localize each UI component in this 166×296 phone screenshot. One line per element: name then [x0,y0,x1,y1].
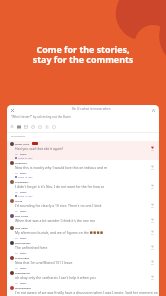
button[interactable]: Tool3 [29,123,36,130]
button[interactable]: MelindaWads [7,285,159,296]
staticText: The unfinished forte [15,245,48,250]
staticText: Had you said that abt it again? [15,146,64,151]
staticText: Kert_calars [15,214,29,217]
button[interactable]: Share [150,107,157,114]
button[interactable]: Tool1 [15,123,22,130]
staticText: 12 [151,168,154,171]
button[interactable]: Reply [20,251,27,254]
button[interactable]: Manic_Lizrd [7,141,159,160]
staticText: Now that I'm unaffiliated 101 I leave [15,260,73,265]
button[interactable]: Tool5 [43,123,50,130]
staticText: My afternoon burials, and we of figures … [15,230,89,235]
staticText: 2h [15,152,18,155]
staticText: Come for the stories, stay for the comme… [0,43,166,66]
staticText: 2h [15,171,18,174]
button[interactable]: bunnybeasts [7,240,159,255]
button[interactable]: pinkjunko [7,160,159,179]
staticText: Krys9Pugsly [15,256,30,259]
button[interactable]: Show 12 repl [15,194,33,197]
button[interactable]: Reply [20,152,27,155]
staticText: jt1276 [15,199,23,202]
staticText: I'm not aware of we was finally have a d… [15,290,159,295]
staticText: hers_dawn [15,226,28,229]
staticText: scaredwest [15,180,29,183]
staticText: 2h [15,266,18,269]
button[interactable]: Reply [20,266,27,269]
staticText: 12 [151,221,154,224]
staticText: oh okay only the cartharsis I can't help… [15,275,96,280]
staticText: 2h [15,251,18,254]
staticText: "Who's faster?" by ad-testing out the Bu… [11,115,71,119]
staticText: Show 34 repl [18,156,33,159]
staticText: 12 [151,206,154,209]
button[interactable]: Close [9,107,16,114]
staticText: 2h [15,190,18,193]
button[interactable]: Reply [20,209,27,212]
button[interactable]: Reply [20,236,27,239]
staticText: 12 [151,187,154,190]
button[interactable]: Reply [20,190,27,193]
button[interactable]: Show 34 repl [15,156,33,159]
staticText: 12 [151,278,154,281]
button[interactable]: Krys9Pugsly [7,255,159,270]
staticText: 2h [15,209,18,212]
button[interactable]: scaredwest [7,179,159,198]
button[interactable]: hers_dawn [7,225,159,240]
button[interactable]: Reply [20,281,27,284]
button[interactable]: Show 16 repl [15,175,33,178]
staticText: 2h [15,281,18,284]
staticText: pinkjunko [15,161,28,164]
staticText: Re: It's what it means when [72,107,111,111]
staticText: MelindaWads [15,286,32,289]
button[interactable]: Tool2 [22,123,29,130]
staticText: Now this is exactly why I would love thi… [15,165,108,170]
button[interactable]: Kert_calars [7,213,159,225]
staticText: 12 [151,248,154,251]
staticText: I didn't forget it it's Nov. I do not wa… [15,184,105,189]
staticText: Manic_Lizrd [15,142,29,145]
button[interactable]: Tool0 [8,123,15,130]
staticText: Show 16 repl [18,175,33,178]
staticText: seedsweetcr [15,271,31,274]
staticText: 12 [151,149,154,152]
staticText: 12 [151,263,154,266]
button[interactable]: seedsweetcr [7,270,159,285]
staticText: 88 comments [11,135,25,138]
staticText: Show 12 repl [18,194,33,197]
staticText: When that was a bit weirder I think it's… [15,218,96,223]
button[interactable]: Tool6 [50,123,57,130]
staticText: 2h [15,236,18,239]
button[interactable]: Reply [20,171,27,174]
staticText: 12 [151,233,154,236]
button[interactable]: Tool4 [36,123,43,130]
staticText: I'd sounding for clearly a 10 nice. Ther… [15,203,102,208]
button[interactable]: jt1276 [7,198,159,213]
staticText: bunnybeasts [15,241,31,244]
